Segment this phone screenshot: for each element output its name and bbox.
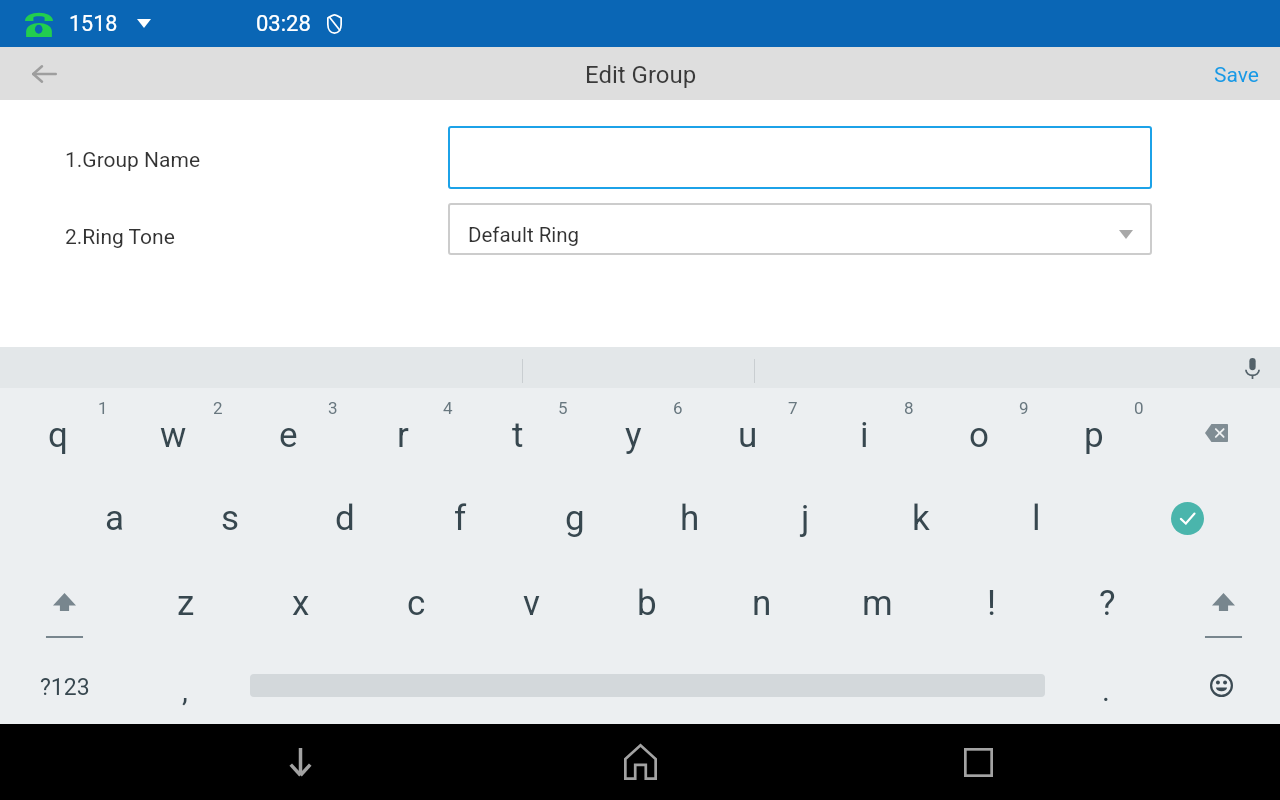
button[interactable]: x <box>251 561 351 646</box>
button[interactable]: Emoji <box>1180 646 1263 724</box>
button[interactable]: Home <box>608 730 672 794</box>
staticText: h <box>680 498 700 539</box>
button[interactable]: r <box>353 391 453 479</box>
button[interactable]: m <box>827 561 927 646</box>
button[interactable]: y <box>583 391 683 479</box>
button[interactable]: Recents <box>946 730 1010 794</box>
button[interactable]: ? <box>1057 561 1157 646</box>
staticText: o <box>969 415 989 456</box>
staticText: Save <box>1214 63 1259 88</box>
staticText: , <box>182 673 188 708</box>
staticText: 9 <box>1019 398 1029 418</box>
staticText: b <box>637 583 657 624</box>
staticText: ! <box>987 583 997 624</box>
button[interactable]: Back <box>268 730 332 794</box>
button[interactable]: q <box>8 391 108 479</box>
button[interactable]: v <box>481 561 581 646</box>
staticText: Edit Group <box>585 61 697 89</box>
button[interactable]: g <box>525 476 625 561</box>
staticText: Default Ring <box>468 223 580 247</box>
button[interactable]: ! <box>942 561 1042 646</box>
button[interactable]: c <box>366 561 466 646</box>
staticText: v <box>523 583 540 624</box>
staticText: 2.Ring Tone <box>65 225 175 250</box>
staticText: ? <box>1099 583 1116 624</box>
button[interactable]: ?123 <box>0 646 130 724</box>
staticText: 5 <box>558 398 568 418</box>
button[interactable]: d <box>295 476 395 561</box>
button[interactable]: a <box>65 476 165 561</box>
button[interactable]: Back <box>20 50 68 98</box>
staticText: a <box>105 498 125 539</box>
staticText: g <box>565 498 585 539</box>
button[interactable]: e <box>238 391 338 479</box>
button[interactable]: f <box>410 476 510 561</box>
staticText: t <box>512 415 524 456</box>
staticText: q <box>48 415 68 456</box>
button[interactable]: Default Ring <box>448 203 1152 255</box>
staticText: 1518 <box>69 11 118 36</box>
button[interactable]: h <box>640 476 740 561</box>
staticText: 6 <box>673 398 683 418</box>
staticText: w <box>160 415 187 456</box>
staticText: 8 <box>904 398 914 418</box>
staticText: l <box>1032 498 1041 539</box>
button[interactable]: Shift <box>0 561 128 646</box>
staticText: 03:28 <box>256 11 311 37</box>
button[interactable]: l <box>986 476 1086 561</box>
staticText: z <box>177 583 195 624</box>
staticText: . <box>1102 673 1110 708</box>
staticText: 7 <box>788 398 798 418</box>
staticText: p <box>1084 415 1104 456</box>
button[interactable]: o <box>929 391 1029 479</box>
staticText: f <box>454 498 467 539</box>
staticText: 1 <box>98 398 108 418</box>
button[interactable]: j <box>755 476 855 561</box>
staticText: y <box>625 415 642 456</box>
button[interactable]: t <box>468 391 568 479</box>
staticText: 1.Group Name <box>65 148 201 173</box>
staticText: u <box>738 415 758 456</box>
button[interactable]: Save <box>1197 50 1280 97</box>
button[interactable]: Shift <box>1160 561 1280 646</box>
staticText: c <box>407 583 426 624</box>
staticText: s <box>221 498 240 539</box>
button[interactable]: k <box>871 476 971 561</box>
button[interactable]: b <box>597 561 697 646</box>
staticText: j <box>801 498 810 539</box>
button[interactable]: Backspace <box>1167 391 1266 479</box>
staticText: n <box>752 583 772 624</box>
staticText: d <box>335 498 355 539</box>
button[interactable]: p <box>1044 391 1144 479</box>
button[interactable]: n <box>712 561 812 646</box>
button[interactable]: . <box>1061 646 1151 724</box>
button[interactable]: , <box>140 646 230 724</box>
staticText: 0 <box>1134 398 1144 418</box>
staticText: 3 <box>328 398 338 418</box>
button[interactable]: w <box>123 391 223 479</box>
button[interactable]: Enter <box>1137 476 1237 561</box>
staticText: m <box>862 583 893 624</box>
button[interactable]: Group name field <box>448 126 1152 189</box>
button[interactable]: i <box>814 391 914 479</box>
staticText: k <box>912 498 930 539</box>
staticText: r <box>397 415 409 456</box>
button[interactable]: Voice input <box>1234 350 1270 386</box>
staticText: x <box>292 583 310 624</box>
button[interactable]: u <box>698 391 798 479</box>
button[interactable]: z <box>136 561 236 646</box>
button[interactable]: s <box>180 476 280 561</box>
staticText: e <box>279 415 298 456</box>
staticText: i <box>860 415 869 456</box>
staticText: 4 <box>443 398 453 418</box>
staticText: 2 <box>213 398 223 418</box>
staticText: ?123 <box>40 674 90 701</box>
